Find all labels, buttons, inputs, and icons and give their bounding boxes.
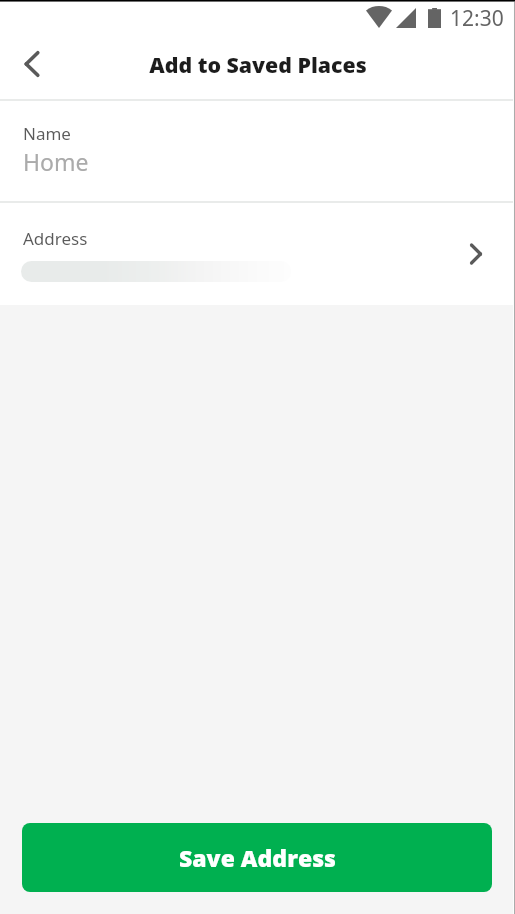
staticText: Address xyxy=(23,227,88,250)
staticText: 12:30 xyxy=(450,4,504,33)
button[interactable]: Address xyxy=(0,203,515,305)
button[interactable]: Name xyxy=(0,101,515,201)
button[interactable]: Save Address xyxy=(22,823,492,892)
button[interactable]: Back xyxy=(12,44,52,84)
staticText: Save Address xyxy=(179,842,336,873)
other: Wi-Fi signal xyxy=(366,8,392,28)
other: Cellular signal xyxy=(396,8,416,28)
staticText: Name xyxy=(23,122,71,145)
staticText: Add to Saved Places xyxy=(149,50,367,79)
other: Battery full xyxy=(428,8,441,28)
staticText: Home xyxy=(23,146,89,177)
button[interactable]: Choose address xyxy=(456,234,496,274)
